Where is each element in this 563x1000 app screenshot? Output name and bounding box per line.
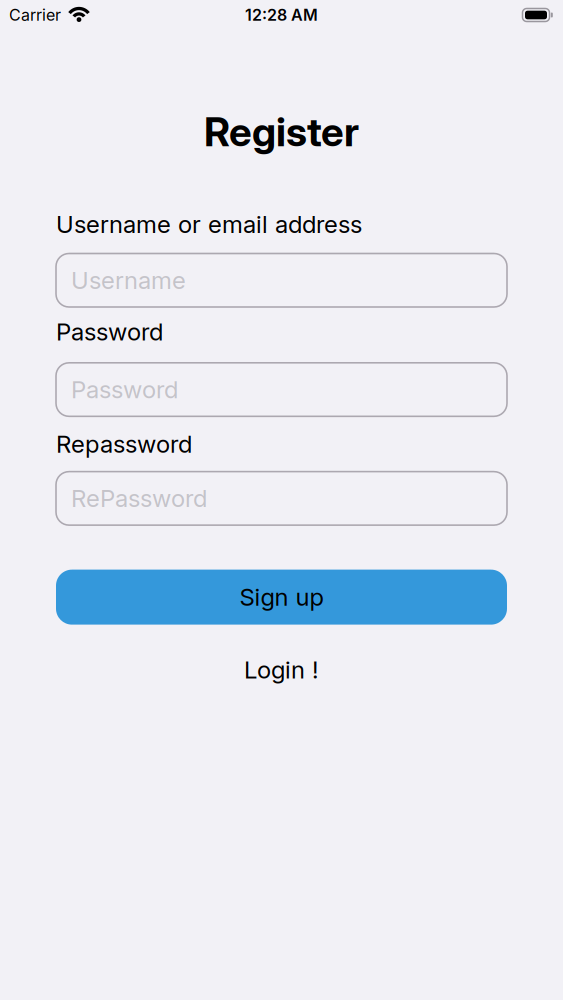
staticText: Repassword bbox=[56, 430, 192, 458]
button[interactable]: Username bbox=[56, 253, 507, 307]
button[interactable]: RePassword bbox=[56, 472, 507, 525]
staticText: Sign up bbox=[239, 583, 323, 611]
staticText: Carrier bbox=[9, 6, 61, 24]
staticText: Login ! bbox=[244, 656, 319, 684]
button[interactable]: Login ! bbox=[244, 656, 319, 684]
staticText: Password bbox=[56, 317, 163, 346]
staticText: Register bbox=[204, 108, 359, 155]
button[interactable]: Sign up bbox=[56, 570, 507, 625]
staticText: Username or email address bbox=[56, 210, 362, 238]
staticText: 12:28 AM bbox=[245, 6, 318, 24]
staticText: Password bbox=[71, 375, 178, 404]
staticText: RePassword bbox=[71, 484, 207, 512]
staticText: Username bbox=[71, 266, 186, 294]
button[interactable]: Password bbox=[56, 363, 507, 416]
